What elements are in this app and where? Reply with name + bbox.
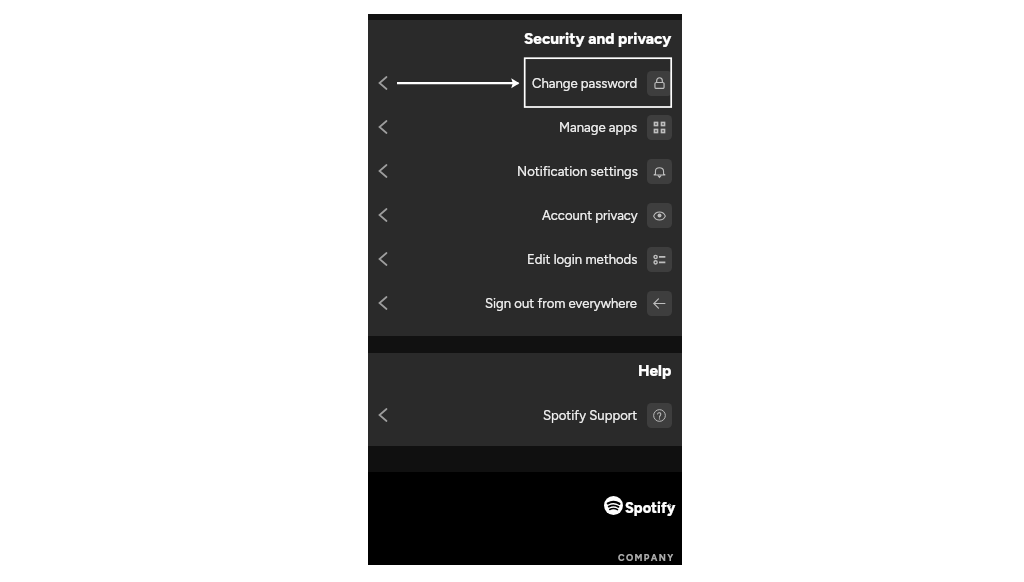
other: Sign out from everywhere bbox=[647, 291, 672, 316]
button[interactable]: Back bbox=[368, 105, 682, 149]
other: Change password bbox=[647, 71, 672, 96]
staticText: Spotify bbox=[625, 499, 676, 517]
other: Back bbox=[375, 251, 391, 267]
other: Notification settings bbox=[647, 159, 672, 184]
staticText: Sign out from everywhere bbox=[485, 296, 638, 312]
staticText: Account privacy bbox=[542, 208, 638, 224]
other: Account privacy bbox=[647, 203, 672, 228]
staticText: Edit login methods bbox=[527, 252, 638, 268]
other: Edit login methods bbox=[647, 247, 672, 272]
button[interactable]: Back bbox=[368, 237, 682, 281]
button[interactable]: Back bbox=[368, 149, 682, 193]
staticText: COMPANY bbox=[618, 552, 675, 563]
staticText: Change password bbox=[532, 76, 638, 92]
staticText: Notification settings bbox=[517, 164, 638, 180]
button[interactable]: Back bbox=[368, 393, 682, 437]
staticText: Spotify Support bbox=[543, 408, 638, 424]
other: Spotify Support bbox=[647, 403, 672, 428]
other: Spotify bbox=[604, 496, 623, 515]
other: Back bbox=[375, 407, 391, 423]
button[interactable]: Back bbox=[368, 61, 682, 105]
other: Back bbox=[375, 163, 391, 179]
button[interactable]: Back bbox=[368, 281, 682, 325]
other: Manage apps bbox=[647, 115, 672, 140]
button[interactable]: Back bbox=[368, 193, 682, 237]
staticText: Manage apps bbox=[559, 120, 638, 136]
other: Back bbox=[375, 75, 391, 91]
other: Back bbox=[375, 207, 391, 223]
other: Back bbox=[375, 119, 391, 135]
other: Back bbox=[375, 295, 391, 311]
staticText: Security and privacy bbox=[524, 29, 672, 47]
staticText: Help bbox=[638, 361, 672, 379]
